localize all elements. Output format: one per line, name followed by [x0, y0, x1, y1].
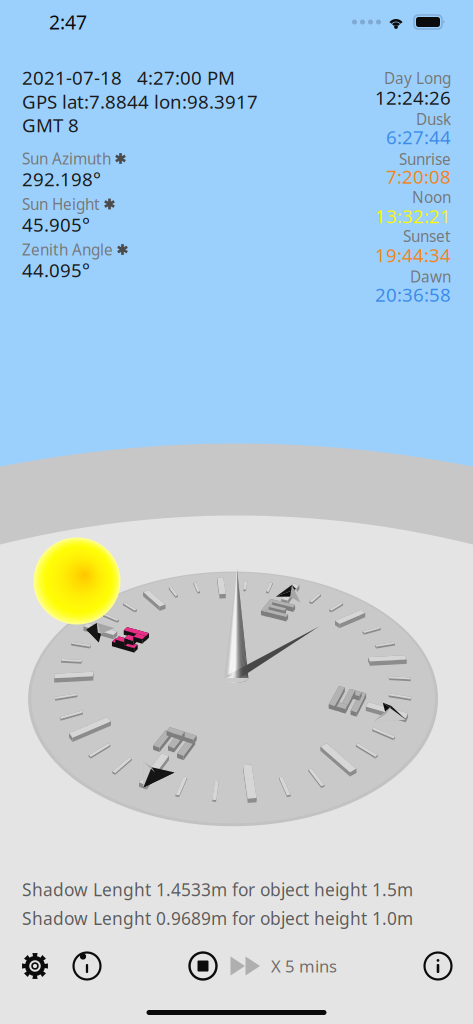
staticText: Dusk [416, 109, 451, 129]
staticText: Shadow Lenght 0.9689m for object height … [22, 906, 413, 930]
staticText: 12:24:26 [375, 85, 451, 110]
staticText: 44.095° [22, 257, 90, 283]
button[interactable]: Location [72, 951, 102, 981]
staticText: Day Long [384, 68, 451, 88]
button[interactable]: Stop [188, 951, 218, 981]
staticText: 13:32:21 [375, 203, 451, 229]
staticText: GMT 8 [22, 112, 79, 138]
button[interactable]: Settings [20, 951, 50, 981]
staticText: 6:27:44 [386, 124, 451, 150]
staticText: Noon [412, 187, 451, 207]
staticText: X 5 mins [271, 955, 337, 977]
staticText: 292.198° [22, 166, 101, 192]
staticText: 2021-07-18 4:27:00 PM [22, 65, 235, 90]
staticText: 20:36:58 [375, 282, 451, 307]
staticText: Sun Azimuth [22, 148, 111, 169]
staticText: GPS lat:7.8844 lon:98.3917 [22, 89, 258, 114]
staticText: Dawn [410, 266, 451, 287]
staticText: 45.905° [22, 212, 90, 237]
staticText: 7:20:08 [386, 164, 451, 189]
staticText: 2:47 [49, 9, 87, 35]
button[interactable]: Fast forward [230, 954, 261, 977]
staticText: Sun Height [22, 194, 100, 214]
button[interactable]: Information [423, 951, 453, 981]
staticText: Sunrise [399, 149, 451, 169]
staticText: Zenith Angle [22, 239, 113, 260]
staticText: Sunset [403, 226, 451, 246]
staticText: Shadow Lenght 1.4533m for object height … [22, 878, 413, 901]
staticText: 19:44:34 [375, 242, 451, 268]
